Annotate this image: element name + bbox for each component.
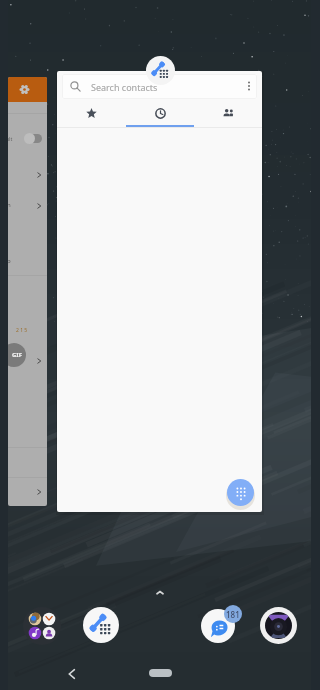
button[interactable]: Search contacts [62, 74, 257, 99]
staticText: ult [8, 136, 13, 143]
button[interactable]: Contacts [194, 102, 262, 127]
button[interactable]: More options [239, 76, 259, 96]
staticText: Search contacts [91, 81, 158, 93]
staticText: GIF [12, 351, 22, 359]
button[interactable]: Folder [23, 607, 61, 645]
staticText: 181 [226, 609, 240, 620]
button[interactable]: ult [8, 77, 47, 506]
button[interactable]: Phone [83, 607, 119, 643]
button[interactable]: Messages [201, 609, 235, 643]
staticText: p [8, 257, 11, 265]
button[interactable]: Phone app [146, 56, 175, 85]
staticText: 2 1 5 [16, 327, 28, 334]
button[interactable]: Camera [260, 607, 297, 644]
button[interactable]: Back [66, 668, 78, 680]
button[interactable]: Favourites [57, 102, 126, 127]
staticText: n [8, 201, 11, 209]
button[interactable]: Recents [126, 102, 194, 127]
button[interactable]: Home [149, 669, 172, 677]
button[interactable]: App drawer [155, 588, 165, 598]
button[interactable]: Dialpad [227, 479, 254, 506]
